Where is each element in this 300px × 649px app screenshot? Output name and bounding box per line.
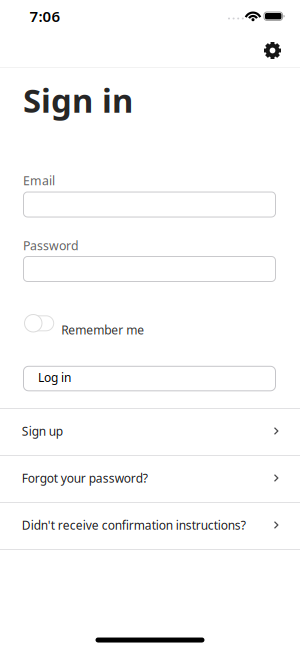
button[interactable]: Log in — [23, 366, 276, 391]
button[interactable]: Settings — [256, 34, 289, 67]
button[interactable]: Didn't receive confirmation instructions… — [0, 502, 300, 548]
button[interactable]: Sign up — [0, 408, 300, 454]
staticText: Password — [23, 237, 79, 254]
staticText: Forgot your password? — [22, 470, 148, 486]
staticText: Log in — [38, 369, 71, 385]
button[interactable]: Forgot your password? — [0, 455, 300, 501]
staticText: 7:06 — [29, 6, 60, 26]
staticText: Sign in — [23, 78, 133, 122]
staticText: Sign up — [22, 423, 63, 439]
staticText: Didn't receive confirmation instructions… — [22, 517, 246, 533]
button[interactable]: Remember me — [24, 314, 149, 340]
staticText: Remember me — [61, 322, 144, 338]
staticText: Email — [23, 172, 55, 189]
